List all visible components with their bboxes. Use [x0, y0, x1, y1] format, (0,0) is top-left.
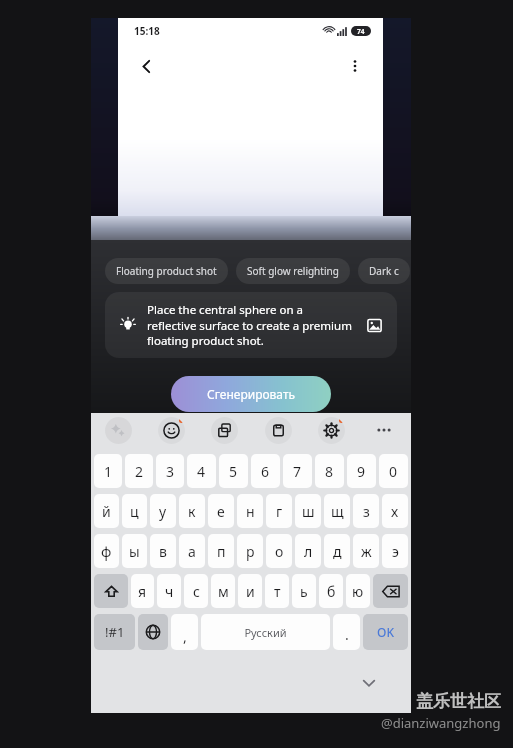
staticText: м	[218, 582, 229, 601]
button[interactable]: м	[211, 574, 235, 608]
button[interactable]: 8	[315, 454, 344, 488]
button[interactable]: 7	[283, 454, 312, 488]
button[interactable]: э	[382, 534, 408, 568]
button[interactable]: 4	[187, 454, 216, 488]
staticText: н	[246, 502, 255, 521]
button[interactable]: Soft glow relighting	[247, 258, 339, 284]
staticText: з	[363, 502, 370, 521]
staticText: г	[276, 502, 283, 521]
button[interactable]: 9	[347, 454, 376, 488]
staticText: о	[275, 542, 284, 561]
staticText: 15:18	[134, 24, 160, 38]
button[interactable]: Clipboard	[265, 417, 292, 444]
button[interactable]: Change language	[138, 614, 168, 650]
staticText: 3	[166, 462, 175, 481]
button[interactable]: Back	[128, 48, 164, 84]
button[interactable]: ж	[353, 534, 379, 568]
button[interactable]: Hide keyboard	[353, 667, 385, 699]
staticText: ц	[130, 502, 139, 521]
staticText: ч	[165, 582, 174, 601]
button[interactable]: х	[382, 494, 408, 528]
staticText: п	[217, 542, 226, 561]
button[interactable]: 0	[379, 454, 408, 488]
button[interactable]: ,	[171, 614, 198, 650]
staticText: с	[193, 582, 200, 601]
staticText: щ	[331, 502, 344, 521]
button[interactable]: ь	[292, 574, 316, 608]
button[interactable]: з	[353, 494, 379, 528]
button[interactable]: л	[295, 534, 321, 568]
button[interactable]: 6	[251, 454, 280, 488]
button[interactable]: щ	[324, 494, 350, 528]
staticText: х	[391, 502, 399, 521]
button[interactable]: в	[150, 534, 176, 568]
button[interactable]: а	[179, 534, 205, 568]
staticText: 8	[325, 462, 334, 481]
button[interactable]: Settings	[318, 417, 345, 444]
staticText: р	[246, 542, 255, 561]
button[interactable]: д	[324, 534, 350, 568]
staticText: 1	[104, 462, 113, 481]
button[interactable]: ч	[157, 574, 181, 608]
button[interactable]: п	[208, 534, 234, 568]
staticText: ,	[183, 627, 187, 646]
button[interactable]: 5	[219, 454, 248, 488]
staticText: Soft glow relighting	[247, 264, 339, 278]
button[interactable]: б	[319, 574, 343, 608]
button[interactable]: о	[266, 534, 292, 568]
button[interactable]: Place the central sphere on a reflective…	[115, 292, 387, 358]
button[interactable]: ц	[122, 494, 147, 528]
staticText: д	[333, 542, 342, 561]
button[interactable]: Floating product shot	[116, 258, 217, 284]
button[interactable]: 2	[125, 454, 153, 488]
staticText: и	[246, 582, 255, 601]
button[interactable]: и	[238, 574, 262, 608]
button[interactable]: т	[265, 574, 289, 608]
button[interactable]: Translate	[211, 417, 238, 444]
staticText: .	[345, 625, 349, 644]
button[interactable]: Сгенерировать	[171, 376, 331, 412]
button[interactable]: р	[237, 534, 263, 568]
staticText: й	[102, 502, 111, 521]
button[interactable]: ю	[346, 574, 370, 608]
button[interactable]: Emoji	[158, 417, 185, 444]
button[interactable]: ф	[94, 534, 119, 568]
staticText: 6	[261, 462, 270, 481]
button[interactable]: !#1	[94, 614, 135, 650]
button[interactable]: More	[371, 417, 397, 443]
button[interactable]: ш	[295, 494, 321, 528]
button[interactable]: AI suggestions	[105, 417, 132, 444]
button[interactable]: Shift	[94, 574, 128, 608]
staticText: л	[304, 542, 313, 561]
staticText: 74	[357, 27, 365, 36]
staticText: ж	[361, 542, 372, 561]
button[interactable]: с	[184, 574, 208, 608]
button[interactable]: 3	[156, 454, 184, 488]
button[interactable]: у	[150, 494, 176, 528]
button[interactable]: Backspace	[373, 574, 408, 608]
staticText: Русский	[244, 625, 287, 640]
button[interactable]: й	[94, 494, 119, 528]
staticText: Dark c	[369, 264, 399, 278]
staticText: э	[392, 542, 399, 561]
button[interactable]: к	[179, 494, 205, 528]
staticText: ш	[302, 502, 315, 521]
staticText: Place the central sphere on a reflective…	[147, 302, 355, 348]
button[interactable]: е	[208, 494, 234, 528]
button[interactable]: г	[266, 494, 292, 528]
staticText: ы	[129, 542, 140, 561]
button[interactable]: Add image	[361, 312, 387, 338]
button[interactable]: 1	[94, 454, 122, 488]
button[interactable]: .	[333, 614, 360, 650]
button[interactable]: More options	[337, 48, 373, 84]
staticText: я	[138, 582, 147, 601]
button[interactable]: Dark c	[369, 258, 399, 284]
button[interactable]: я	[131, 574, 154, 608]
staticText: б	[327, 582, 336, 601]
button[interactable]: OK	[363, 614, 408, 650]
staticText: ф	[101, 542, 112, 561]
staticText: ю	[352, 582, 364, 601]
button[interactable]: н	[237, 494, 263, 528]
button[interactable]: ы	[122, 534, 147, 568]
button[interactable]: Русский	[201, 614, 330, 650]
